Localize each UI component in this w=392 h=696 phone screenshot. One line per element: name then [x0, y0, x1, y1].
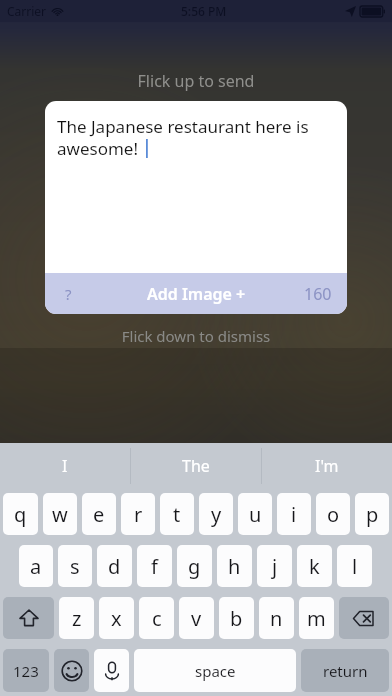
- staticText: n: [270, 605, 283, 632]
- staticText: Add Image +: [147, 283, 246, 305]
- staticText: The Japanese restaurant here is awesome!: [57, 115, 335, 160]
- staticText: i: [291, 501, 297, 528]
- button[interactable]: 160: [289, 273, 347, 314]
- staticText: d: [108, 553, 121, 580]
- button[interactable]: Shift: [3, 597, 54, 639]
- button[interactable]: b: [219, 597, 254, 639]
- button[interactable]: f: [137, 545, 172, 587]
- staticText: Flick down to dismiss: [0, 326, 392, 346]
- button[interactable]: Add Image +: [121, 273, 271, 314]
- button[interactable]: space: [134, 649, 296, 692]
- button[interactable]: s: [58, 545, 92, 587]
- button[interactable]: Emoji: [54, 649, 89, 692]
- button[interactable]: I: [0, 443, 130, 489]
- button[interactable]: The Japanese restaurant here is awesome!: [45, 101, 347, 314]
- staticText: c: [152, 605, 162, 632]
- staticText: 123: [13, 661, 39, 681]
- staticText: q: [14, 501, 27, 528]
- button[interactable]: r: [121, 493, 155, 535]
- button[interactable]: g: [177, 545, 212, 587]
- button[interactable]: The: [131, 443, 261, 489]
- staticText: f: [151, 553, 158, 580]
- button[interactable]: I'm: [262, 443, 392, 489]
- staticText: I: [62, 455, 68, 477]
- staticText: h: [228, 553, 241, 580]
- staticText: m: [307, 605, 326, 632]
- button[interactable]: o: [316, 493, 350, 535]
- button[interactable]: z: [59, 597, 94, 639]
- staticText: ?: [65, 284, 72, 304]
- button[interactable]: k: [297, 545, 332, 587]
- staticText: 160: [304, 283, 332, 305]
- staticText: o: [327, 501, 340, 528]
- staticText: b: [230, 605, 243, 632]
- button[interactable]: return: [301, 649, 389, 692]
- button[interactable]: y: [199, 493, 233, 535]
- staticText: 5:56 PM: [181, 3, 227, 19]
- button[interactable]: l: [337, 545, 372, 587]
- staticText: l: [352, 553, 358, 580]
- staticText: z: [72, 605, 82, 632]
- button[interactable]: p: [355, 493, 389, 535]
- staticText: p: [366, 501, 379, 528]
- staticText: The: [182, 455, 210, 477]
- button[interactable]: a: [19, 545, 53, 587]
- staticText: t: [173, 501, 181, 528]
- button[interactable]: i: [277, 493, 311, 535]
- button[interactable]: n: [259, 597, 294, 639]
- button[interactable]: h: [217, 545, 252, 587]
- staticText: Flick up to send: [0, 70, 392, 92]
- staticText: y: [211, 501, 222, 528]
- staticText: Carrier: [7, 3, 47, 19]
- button[interactable]: 123: [3, 649, 49, 692]
- button[interactable]: Dictate: [94, 649, 129, 692]
- button[interactable]: q: [3, 493, 38, 535]
- staticText: x: [111, 605, 122, 632]
- staticText: I'm: [315, 455, 339, 477]
- button[interactable]: e: [82, 493, 116, 535]
- staticText: r: [134, 501, 143, 528]
- button[interactable]: v: [179, 597, 214, 639]
- staticText: g: [188, 553, 201, 580]
- staticText: return: [323, 661, 368, 681]
- button[interactable]: w: [43, 493, 77, 535]
- button[interactable]: d: [97, 545, 132, 587]
- staticText: u: [249, 501, 262, 528]
- button[interactable]: ?: [45, 273, 91, 314]
- button[interactable]: Backspace: [339, 597, 389, 639]
- staticText: space: [195, 661, 236, 681]
- button[interactable]: u: [238, 493, 272, 535]
- staticText: a: [30, 553, 42, 580]
- staticText: s: [70, 553, 80, 580]
- button[interactable]: m: [299, 597, 334, 639]
- button[interactable]: x: [99, 597, 134, 639]
- staticText: e: [93, 501, 105, 528]
- button[interactable]: c: [139, 597, 174, 639]
- button[interactable]: j: [257, 545, 292, 587]
- staticText: w: [52, 501, 68, 528]
- button[interactable]: t: [160, 493, 194, 535]
- staticText: k: [309, 553, 320, 580]
- staticText: v: [191, 605, 202, 632]
- staticText: j: [272, 553, 278, 580]
